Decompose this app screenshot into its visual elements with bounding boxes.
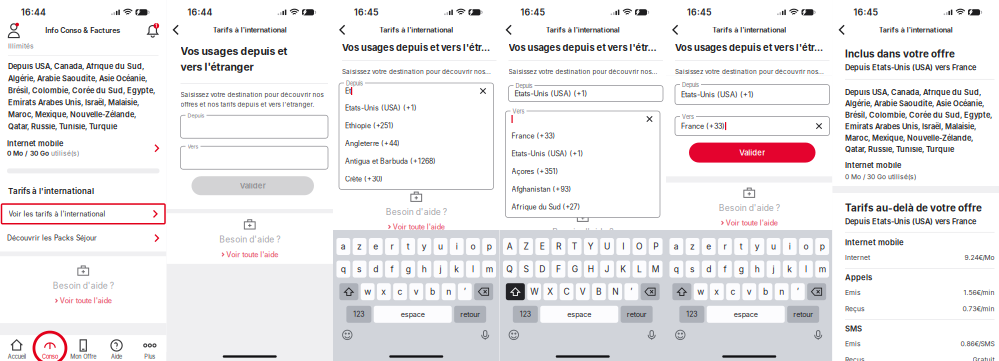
- button[interactable]: t: [401, 238, 415, 255]
- button[interactable]: Etats-Unis (USA) (+1): [505, 145, 660, 163]
- button[interactable]: z: [353, 238, 366, 255]
- button[interactable]: j: [434, 261, 447, 278]
- button[interactable]: n: [442, 283, 456, 300]
- button[interactable]: Valider: [191, 176, 314, 195]
- button[interactable]: k: [783, 261, 797, 278]
- button[interactable]: a: [336, 238, 350, 255]
- button[interactable]: espace: [540, 306, 618, 323]
- button[interactable]: Voir toute l'aide: [721, 217, 778, 227]
- button[interactable]: 123: [513, 306, 538, 323]
- button[interactable]: ’: [458, 283, 472, 300]
- button[interactable]: Majuscule: [672, 283, 691, 300]
- button[interactable]: Effacer: [474, 283, 493, 300]
- button[interactable]: Retour: [333, 20, 354, 40]
- button[interactable]: f: [718, 261, 732, 278]
- button[interactable]: Plus: [133, 335, 166, 361]
- button[interactable]: P: [649, 238, 663, 255]
- button[interactable]: X: [543, 283, 557, 300]
- button[interactable]: N: [608, 283, 622, 300]
- button[interactable]: o: [799, 238, 813, 255]
- button[interactable]: a: [669, 238, 683, 255]
- button[interactable]: retour: [454, 306, 486, 323]
- button[interactable]: Antigua et Barbuda (+1268): [339, 152, 493, 170]
- button[interactable]: n: [775, 283, 789, 300]
- button[interactable]: O: [632, 238, 646, 255]
- button[interactable]: l: [799, 261, 813, 278]
- button[interactable]: s: [686, 261, 699, 278]
- button[interactable]: c: [393, 283, 407, 300]
- button[interactable]: q: [336, 261, 350, 278]
- button[interactable]: t: [734, 238, 748, 255]
- button[interactable]: g: [401, 261, 415, 278]
- button[interactable]: Afghanistan (+93): [505, 180, 660, 198]
- button[interactable]: Ethiopie (+251): [339, 117, 493, 135]
- button[interactable]: U: [600, 238, 614, 255]
- button[interactable]: Conso: [33, 335, 67, 361]
- button[interactable]: Emoji: [671, 330, 686, 340]
- button[interactable]: Dictée: [646, 330, 661, 340]
- button[interactable]: f: [385, 261, 399, 278]
- button[interactable]: p: [482, 238, 496, 255]
- button[interactable]: Accueil: [0, 335, 33, 361]
- button[interactable]: Retour: [499, 20, 520, 40]
- button[interactable]: r: [718, 238, 732, 255]
- button[interactable]: p: [815, 238, 829, 255]
- button[interactable]: Notifications: [141, 23, 166, 38]
- button[interactable]: H: [584, 261, 598, 278]
- button[interactable]: Aide: [100, 335, 133, 361]
- button[interactable]: M: [649, 261, 663, 278]
- button[interactable]: h: [417, 261, 431, 278]
- button[interactable]: g: [734, 261, 748, 278]
- button[interactable]: Voir toute l'aide: [388, 221, 445, 231]
- button[interactable]: Afrique du Sud (+27): [505, 198, 660, 216]
- button[interactable]: e: [369, 238, 383, 255]
- button[interactable]: S: [519, 261, 533, 278]
- button[interactable]: V: [576, 283, 590, 300]
- button[interactable]: T: [568, 238, 582, 255]
- button[interactable]: z: [686, 238, 699, 255]
- button[interactable]: v: [409, 283, 423, 300]
- button[interactable]: Voir les tarifs à l'international: [1, 204, 165, 224]
- button[interactable]: Effacer: [807, 283, 826, 300]
- button[interactable]: Mon Offre: [67, 335, 100, 361]
- button[interactable]: R: [551, 238, 565, 255]
- button[interactable]: ’: [791, 283, 805, 300]
- button[interactable]: 123: [346, 306, 371, 323]
- button[interactable]: v: [742, 283, 756, 300]
- button[interactable]: K: [616, 261, 630, 278]
- button[interactable]: b: [426, 283, 439, 300]
- button[interactable]: Découvrir les Packs Séjour: [0, 230, 166, 246]
- button[interactable]: C: [560, 283, 573, 300]
- button[interactable]: Majuscule: [339, 283, 358, 300]
- button[interactable]: h: [750, 261, 764, 278]
- button[interactable]: France (+33): [505, 127, 660, 145]
- button[interactable]: Retour: [666, 20, 687, 40]
- button[interactable]: D: [535, 261, 549, 278]
- button[interactable]: Effacer: [641, 283, 660, 300]
- button[interactable]: Dictée: [479, 330, 494, 340]
- button[interactable]: L: [632, 261, 646, 278]
- button[interactable]: Y: [584, 238, 598, 255]
- button[interactable]: w: [361, 283, 375, 300]
- button[interactable]: o: [466, 238, 480, 255]
- button[interactable]: J: [600, 261, 614, 278]
- button[interactable]: espace: [707, 306, 785, 323]
- button[interactable]: j: [767, 261, 780, 278]
- button[interactable]: Crète (+30): [339, 170, 493, 188]
- button[interactable]: retour: [621, 306, 653, 323]
- button[interactable]: i: [783, 238, 797, 255]
- button[interactable]: y: [417, 238, 431, 255]
- button[interactable]: 123: [679, 306, 704, 323]
- button[interactable]: espace: [374, 306, 452, 323]
- button[interactable]: d: [369, 261, 383, 278]
- button[interactable]: Effacer le champ: [477, 85, 488, 96]
- button[interactable]: u: [434, 238, 447, 255]
- button[interactable]: I: [616, 238, 630, 255]
- button[interactable]: s: [353, 261, 366, 278]
- button[interactable]: Etats-Unis (USA) (+1): [339, 99, 493, 117]
- button[interactable]: k: [450, 261, 464, 278]
- button[interactable]: Açores (+351): [505, 163, 660, 180]
- button[interactable]: m: [815, 261, 829, 278]
- button[interactable]: i: [450, 238, 464, 255]
- button[interactable]: y: [750, 238, 764, 255]
